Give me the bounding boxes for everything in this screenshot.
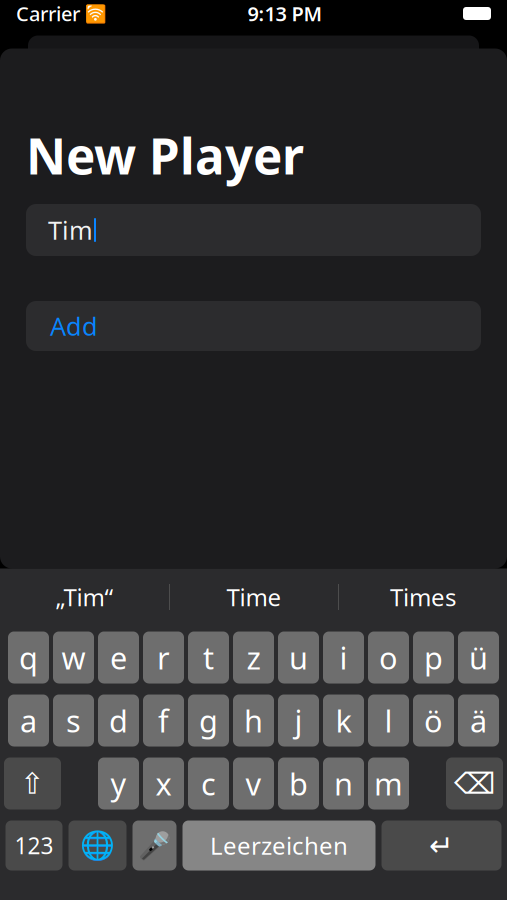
staticText: 9:13 PM <box>247 0 322 27</box>
button[interactable]: x <box>143 757 184 809</box>
staticText: ↵ <box>429 829 454 862</box>
staticText: o <box>379 637 398 678</box>
button[interactable]: Numbers <box>5 820 62 870</box>
button[interactable]: Tim <box>26 204 481 256</box>
staticText: i <box>339 637 347 678</box>
button[interactable]: d <box>98 694 139 746</box>
staticText: c <box>201 763 216 804</box>
staticText: l <box>384 700 392 741</box>
staticText: 🛜 <box>80 2 107 25</box>
staticText: d <box>109 700 128 741</box>
button[interactable]: w <box>53 631 94 683</box>
staticText: ä <box>470 700 487 741</box>
staticText: a <box>20 700 37 741</box>
staticText: 123 <box>14 830 53 860</box>
staticText: Times <box>390 581 456 613</box>
staticText: u <box>289 637 308 678</box>
button[interactable]: Dictation <box>132 820 176 870</box>
button[interactable]: b <box>278 757 319 809</box>
staticText: n <box>334 763 353 804</box>
button[interactable]: y <box>98 757 139 809</box>
staticText: 🌐 <box>80 829 115 861</box>
staticText: g <box>199 700 218 741</box>
staticText: Carrier <box>16 0 80 27</box>
button[interactable]: Delete <box>446 757 503 809</box>
staticText: v <box>245 763 261 804</box>
button[interactable]: n <box>323 757 364 809</box>
staticText: ⌫ <box>454 767 495 800</box>
button[interactable]: j <box>278 694 319 746</box>
button[interactable]: Times <box>339 569 507 625</box>
staticText: w <box>61 637 85 678</box>
button[interactable]: Time <box>170 569 338 625</box>
button[interactable]: ü <box>458 631 499 683</box>
staticText: t <box>203 637 214 678</box>
staticText: m <box>374 763 403 804</box>
staticText: j <box>294 700 302 741</box>
button[interactable]: s <box>53 694 94 746</box>
staticText: h <box>244 700 263 741</box>
button[interactable]: t <box>188 631 229 683</box>
staticText: b <box>289 763 308 804</box>
button[interactable]: Add <box>26 301 481 351</box>
staticText: New Player <box>26 122 304 188</box>
button[interactable]: m <box>368 757 409 809</box>
button[interactable]: f <box>143 694 184 746</box>
button[interactable]: h <box>233 694 274 746</box>
button[interactable]: „Tim“ <box>0 569 169 625</box>
staticText: Leerzeichen <box>210 830 348 861</box>
staticText: z <box>246 637 260 678</box>
button[interactable]: u <box>278 631 319 683</box>
button[interactable]: k <box>323 694 364 746</box>
staticText: ö <box>424 700 443 741</box>
staticText: ⇧ <box>20 767 45 800</box>
staticText: Time <box>226 581 281 613</box>
button[interactable]: g <box>188 694 229 746</box>
staticText: ü <box>469 637 488 678</box>
staticText: q <box>19 637 38 678</box>
button[interactable]: Space <box>182 820 375 870</box>
staticText: „Tim“ <box>55 581 113 613</box>
button[interactable]: c <box>188 757 229 809</box>
staticText: f <box>158 700 169 741</box>
button[interactable]: q <box>8 631 49 683</box>
staticText: e <box>110 637 127 678</box>
button[interactable]: i <box>323 631 364 683</box>
button[interactable]: z <box>233 631 274 683</box>
staticText: s <box>66 700 81 741</box>
button[interactable]: l <box>368 694 409 746</box>
button[interactable]: ö <box>413 694 454 746</box>
staticText: p <box>424 637 443 678</box>
staticText: 🎤 <box>138 830 171 861</box>
staticText: Add <box>50 309 98 343</box>
button[interactable]: r <box>143 631 184 683</box>
button[interactable]: Return <box>381 820 501 870</box>
staticText: r <box>157 637 170 678</box>
staticText: k <box>335 700 351 741</box>
button[interactable]: Shift <box>4 757 61 809</box>
button[interactable]: p <box>413 631 454 683</box>
staticText: y <box>110 763 126 804</box>
staticText: Tim <box>48 213 93 247</box>
button[interactable]: a <box>8 694 49 746</box>
button[interactable]: e <box>98 631 139 683</box>
staticText: x <box>155 763 171 804</box>
button[interactable]: o <box>368 631 409 683</box>
button[interactable]: v <box>233 757 274 809</box>
button[interactable]: Next keyboard <box>68 820 126 870</box>
button[interactable]: ä <box>458 694 499 746</box>
